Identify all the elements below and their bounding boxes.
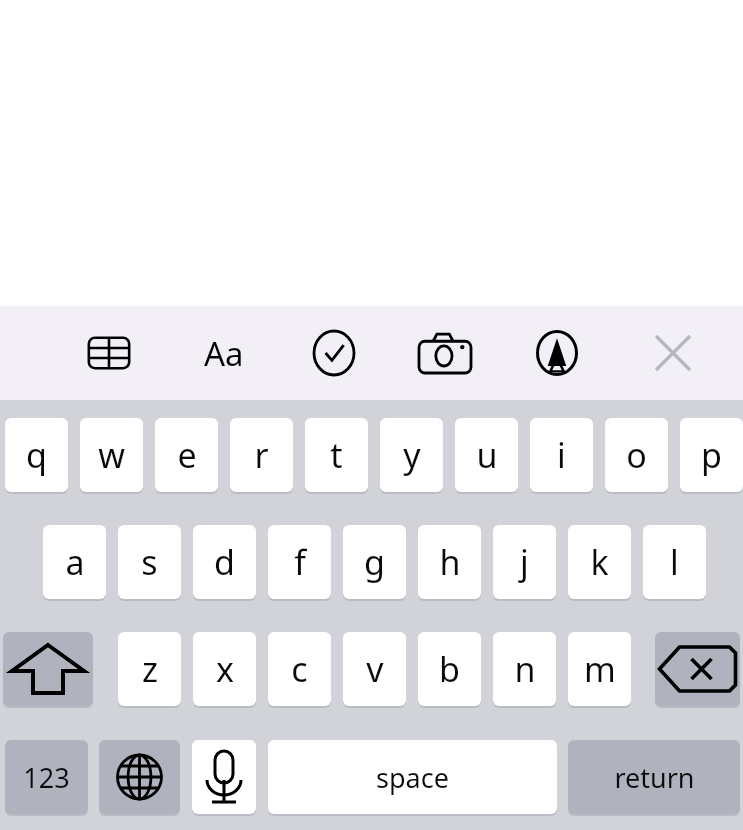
button[interactable]: z	[118, 632, 181, 706]
staticText: r	[254, 432, 269, 478]
staticText: v	[366, 646, 384, 692]
button[interactable]: m	[568, 632, 631, 706]
staticText: w	[98, 432, 125, 478]
staticText: d	[214, 539, 235, 585]
button[interactable]: u	[455, 418, 518, 492]
button[interactable]: x	[193, 632, 256, 706]
button[interactable]: s	[118, 525, 181, 599]
staticText: a	[65, 539, 85, 585]
button[interactable]: w	[80, 418, 143, 492]
button[interactable]: a	[43, 525, 106, 599]
button[interactable]: g	[343, 525, 406, 599]
button[interactable]: Camera	[415, 328, 475, 378]
button[interactable]: i	[530, 418, 593, 492]
button[interactable]: Dictation	[192, 740, 256, 814]
button[interactable]: Next keyboard	[99, 740, 180, 814]
button[interactable]: j	[493, 525, 556, 599]
staticText: return	[614, 759, 695, 796]
button[interactable]: o	[605, 418, 668, 492]
button[interactable]: e	[155, 418, 218, 492]
button[interactable]: Insert table	[79, 329, 139, 377]
button[interactable]: Close	[645, 328, 701, 378]
staticText: t	[330, 432, 343, 478]
staticText: e	[177, 432, 197, 478]
staticText: f	[294, 539, 306, 585]
button[interactable]: Shift	[3, 632, 93, 706]
staticText: m	[584, 646, 616, 692]
button[interactable]: p	[680, 418, 743, 492]
staticText: i	[557, 432, 566, 478]
staticText: space	[376, 759, 449, 796]
button[interactable]: Backspace	[655, 632, 740, 706]
staticText: n	[514, 646, 536, 692]
button[interactable]: space	[268, 740, 557, 814]
button[interactable]: b	[418, 632, 481, 706]
staticText: u	[476, 432, 498, 478]
button[interactable]: t	[305, 418, 368, 492]
button[interactable]: q	[5, 418, 68, 492]
button[interactable]: l	[643, 525, 706, 599]
button[interactable]: k	[568, 525, 631, 599]
staticText: j	[520, 539, 529, 585]
button[interactable]: Markup	[529, 328, 585, 378]
staticText: h	[439, 539, 461, 585]
staticText: z	[142, 646, 158, 692]
button[interactable]: v	[343, 632, 406, 706]
button[interactable]: 123	[5, 740, 88, 814]
staticText: s	[141, 539, 158, 585]
button[interactable]: return	[568, 740, 740, 814]
staticText: g	[364, 539, 385, 585]
button[interactable]: c	[268, 632, 331, 706]
button[interactable]: d	[193, 525, 256, 599]
staticText: o	[626, 432, 647, 478]
button[interactable]: r	[230, 418, 293, 492]
staticText: q	[26, 432, 47, 478]
button[interactable]: Checklist	[306, 328, 362, 378]
staticText: l	[670, 539, 679, 585]
staticText: x	[216, 646, 234, 692]
button[interactable]: h	[418, 525, 481, 599]
staticText: b	[439, 646, 460, 692]
staticText: p	[701, 432, 722, 478]
staticText: k	[590, 539, 609, 585]
button[interactable]: n	[493, 632, 556, 706]
staticText: y	[403, 432, 421, 478]
staticText: Aa	[204, 331, 244, 376]
button[interactable]: f	[268, 525, 331, 599]
staticText: 123	[23, 759, 70, 796]
button[interactable]: y	[380, 418, 443, 492]
staticText: c	[291, 646, 308, 692]
button[interactable]: Aa	[192, 329, 256, 377]
